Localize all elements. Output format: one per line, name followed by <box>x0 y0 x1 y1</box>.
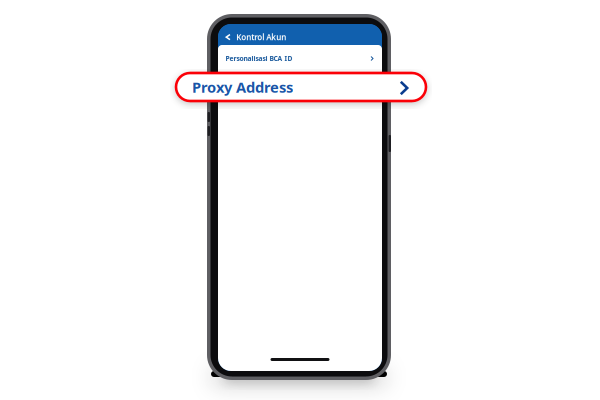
staticText: Proxy Address <box>192 77 293 97</box>
staticText: Kontrol Akun <box>236 32 286 42</box>
button[interactable]: Personalisasi BCA ID <box>218 45 382 72</box>
button[interactable]: Kontrol Akun <box>218 24 382 45</box>
button[interactable]: Proxy Address <box>176 73 426 101</box>
staticText: Personalisasi BCA ID <box>225 54 292 63</box>
